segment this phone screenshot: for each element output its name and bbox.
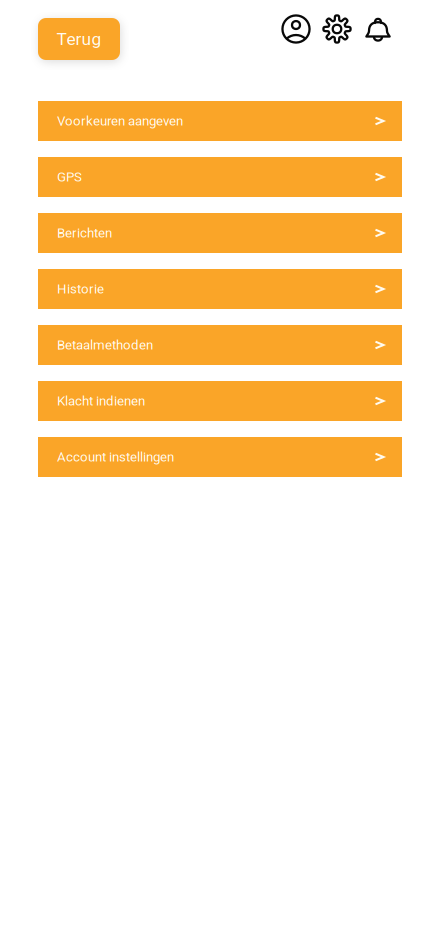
button[interactable]: Betaalmethoden xyxy=(38,325,402,365)
button[interactable]: Klacht indienen xyxy=(38,381,402,421)
button[interactable]: Notifications xyxy=(363,14,393,44)
button[interactable]: Terug xyxy=(38,18,120,60)
button[interactable]: Historie xyxy=(38,269,402,309)
staticText: Voorkeuren aangeven xyxy=(57,113,183,129)
button[interactable]: Account instellingen xyxy=(38,437,402,477)
staticText: Betaalmethoden xyxy=(57,337,153,353)
staticText: Historie xyxy=(57,281,104,297)
staticText: GPS xyxy=(57,169,82,185)
button[interactable]: Account xyxy=(281,14,311,44)
staticText: Terug xyxy=(56,29,101,49)
staticText: Klacht indienen xyxy=(57,393,145,409)
button[interactable]: GPS xyxy=(38,157,402,197)
button[interactable]: Settings xyxy=(322,14,352,44)
staticText: Berichten xyxy=(57,225,112,241)
button[interactable]: Berichten xyxy=(38,213,402,253)
staticText: Account instellingen xyxy=(57,449,174,465)
button[interactable]: Voorkeuren aangeven xyxy=(38,101,402,141)
